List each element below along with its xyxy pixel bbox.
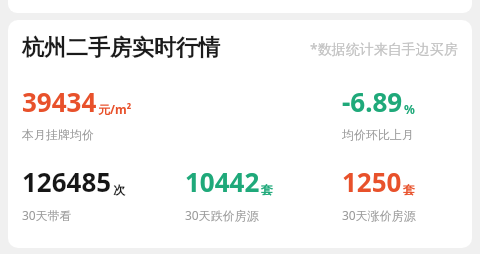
staticText: %: [404, 101, 415, 117]
button[interactable]: 10442: [185, 164, 342, 223]
staticText: 次: [113, 182, 125, 197]
staticText: 1250: [342, 164, 402, 199]
button[interactable]: 杭州二手房实时行情: [8, 20, 472, 248]
staticText: 39434: [22, 84, 97, 119]
staticText: 30天跌价房源: [185, 207, 259, 223]
staticText: 10442: [185, 164, 260, 199]
staticText: 杭州二手房实时行情: [22, 34, 220, 62]
staticText: 套: [261, 182, 273, 197]
staticText: 30天带看: [22, 207, 72, 223]
button[interactable]: 1250: [342, 164, 458, 223]
staticText: 30天涨价房源: [342, 207, 416, 223]
staticText: 本月挂牌均价: [22, 127, 94, 142]
staticText: 均价环比上月: [342, 127, 414, 142]
staticText: 126485: [22, 164, 112, 199]
staticText: *数据统计来自手边买房: [310, 39, 458, 58]
staticText: -6.89: [342, 84, 403, 119]
staticText: 元/m²: [98, 101, 132, 117]
button[interactable]: -6.89: [342, 84, 458, 142]
staticText: 套: [403, 182, 415, 197]
button[interactable]: 126485: [22, 164, 185, 223]
button[interactable]: 39434: [22, 84, 185, 142]
